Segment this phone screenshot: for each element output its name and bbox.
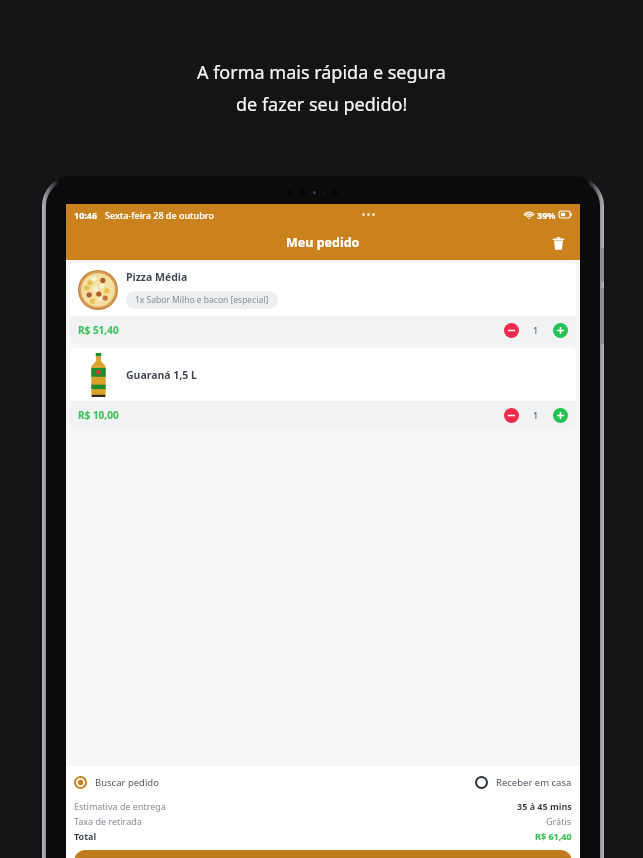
staticText: R$ 10,00 bbox=[78, 408, 119, 422]
staticText: Guaraná 1,5 L bbox=[126, 368, 197, 382]
staticText: Sexta-feira 28 de outubro bbox=[105, 209, 214, 221]
staticText: 10:46 bbox=[74, 209, 98, 221]
button[interactable]: Continuar bbox=[74, 850, 572, 858]
button[interactable]: Meu pedido bbox=[66, 225, 580, 260]
staticText: A forma mais rápida e segura bbox=[197, 60, 446, 85]
staticText: Total bbox=[74, 830, 97, 842]
staticText: Pizza Média bbox=[126, 270, 188, 284]
staticText: 1 bbox=[533, 324, 539, 336]
staticText: 1 bbox=[533, 409, 539, 421]
staticText: 39% bbox=[537, 209, 556, 221]
button[interactable]: Guaraná 1,5 L bbox=[70, 348, 576, 429]
staticText: R$ 51,40 bbox=[78, 323, 119, 337]
staticText: 35 à 45 mins bbox=[517, 800, 572, 812]
staticText: Meu pedido bbox=[286, 234, 360, 251]
staticText: Buscar pedido bbox=[95, 776, 159, 789]
button[interactable]: Buscar pedido bbox=[74, 776, 159, 789]
button[interactable]: Diminuir quantidade bbox=[504, 408, 519, 423]
staticText: Grátis bbox=[546, 815, 572, 827]
button[interactable]: Excluir pedido bbox=[546, 231, 570, 255]
staticText: Estimativa de entrega bbox=[74, 800, 166, 812]
button[interactable]: Pizza Média bbox=[70, 263, 576, 344]
staticText: R$ 61,40 bbox=[535, 830, 572, 842]
staticText: Receber em casa bbox=[496, 776, 572, 789]
staticText: 1x Sabor Milho e bacon [especial] bbox=[135, 294, 269, 306]
staticText: de fazer seu pedido! bbox=[236, 92, 408, 117]
button[interactable]: Receber em casa bbox=[475, 776, 572, 789]
staticText: Taxa de retirada bbox=[74, 815, 142, 827]
button[interactable]: Aumentar quantidade bbox=[553, 323, 568, 338]
button[interactable]: Aumentar quantidade bbox=[553, 408, 568, 423]
button[interactable]: Diminuir quantidade bbox=[504, 323, 519, 338]
